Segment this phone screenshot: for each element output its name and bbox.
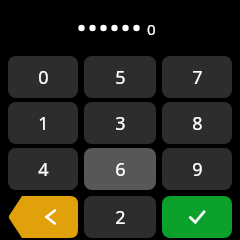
staticText: 9 (192, 157, 203, 182)
staticText: 4 (38, 157, 49, 182)
staticText: 0 (38, 65, 49, 90)
button[interactable]: 9 (162, 148, 232, 190)
button[interactable]: 4 (8, 148, 78, 190)
staticText: 0 (147, 19, 156, 39)
button[interactable]: 7 (162, 56, 232, 98)
button[interactable]: 3 (84, 102, 156, 144)
button[interactable]: 0 (8, 56, 78, 98)
button[interactable]: Delete (8, 196, 78, 238)
staticText: 5 (115, 65, 126, 90)
button[interactable]: Confirm (162, 196, 232, 238)
staticText: 6 (115, 157, 126, 182)
button[interactable]: 5 (84, 56, 156, 98)
staticText: 8 (192, 111, 203, 136)
staticText: 2 (115, 205, 126, 230)
button[interactable]: 8 (162, 102, 232, 144)
staticText: 7 (192, 65, 203, 90)
button[interactable]: 6 (84, 148, 156, 190)
button[interactable]: 2 (84, 196, 156, 238)
staticText: 3 (115, 111, 126, 136)
button[interactable]: 1 (8, 102, 78, 144)
staticText: 1 (38, 111, 49, 136)
